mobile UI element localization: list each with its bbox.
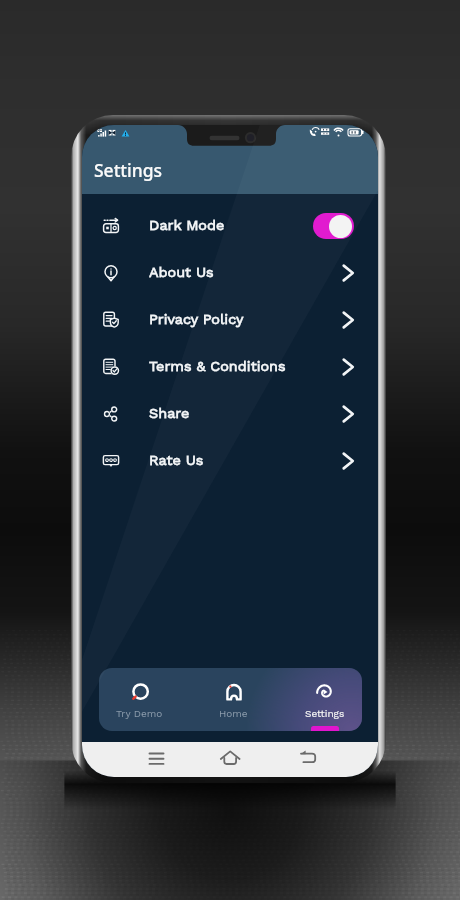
- button[interactable]: Rate Us: [82, 437, 378, 484]
- staticText: Rate Us: [149, 452, 204, 469]
- staticText: Share: [149, 405, 190, 422]
- button[interactable]: Recents: [149, 752, 165, 766]
- button[interactable]: Try Demo: [99, 668, 186, 731]
- staticText: Home: [219, 708, 248, 720]
- staticText: Dark Mode: [149, 217, 225, 234]
- button[interactable]: About Us: [82, 249, 378, 296]
- button[interactable]: Privacy Policy: [82, 296, 378, 343]
- staticText: Settings: [305, 708, 345, 720]
- button[interactable]: Home: [220, 750, 241, 768]
- staticText: Settings: [94, 158, 163, 182]
- staticText: Privacy Policy: [149, 311, 244, 328]
- staticText: About Us: [149, 264, 214, 281]
- button[interactable]: Back: [300, 750, 317, 765]
- button[interactable]: Terms & Conditions: [82, 343, 378, 390]
- button[interactable]: Home: [186, 668, 274, 731]
- staticText: Try Demo: [116, 708, 163, 720]
- button[interactable]: Dark mode toggle: [313, 213, 354, 239]
- button[interactable]: Share: [82, 390, 378, 437]
- button[interactable]: Settings: [274, 668, 362, 731]
- staticText: Terms & Conditions: [149, 358, 286, 375]
- button[interactable]: Dark Mode: [82, 202, 378, 249]
